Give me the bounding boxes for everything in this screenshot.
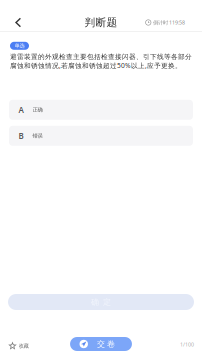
staticText: 1/100 <box>180 341 194 348</box>
button[interactable]: 收藏 <box>0 334 36 354</box>
staticText: 交 卷 <box>97 339 115 349</box>
button[interactable]: A <box>9 100 193 120</box>
button[interactable]: 倒计时 119:58 <box>146 15 202 30</box>
staticText: 错误 <box>32 132 42 139</box>
button[interactable]: 确 定 <box>8 294 194 310</box>
staticText: 正确 <box>32 106 42 113</box>
staticText: 单选 <box>14 42 24 49</box>
staticText: 收藏 <box>18 343 28 349</box>
staticText: 倒计时 119:58 <box>153 19 185 26</box>
staticText: 判断题 <box>84 16 117 29</box>
staticText: 避雷装置的外观检查主要包括检查接闪器、引下线等各部分腐蚀和锈蚀情况,若腐蚀和锈蚀… <box>10 53 192 70</box>
button[interactable]: B <box>9 126 193 146</box>
button[interactable]: 交 卷 <box>70 337 132 351</box>
staticText: 确 定 <box>91 297 111 307</box>
staticText: A <box>18 104 23 115</box>
button[interactable]: Back <box>0 14 29 31</box>
staticText: B <box>18 130 23 141</box>
